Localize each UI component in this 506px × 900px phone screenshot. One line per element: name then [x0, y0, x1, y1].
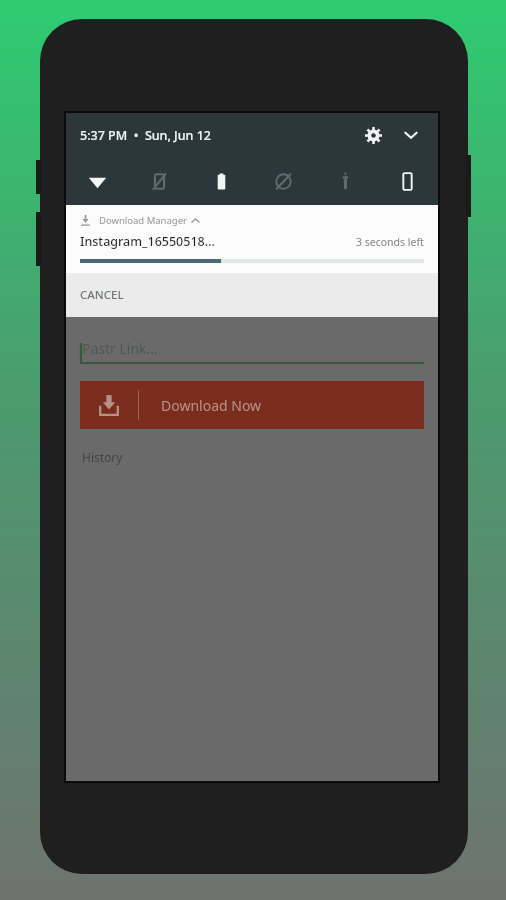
- staticText: Pastr Link...: [82, 339, 158, 358]
- staticText: 5:37 PM • Sun, Jun 12: [80, 127, 211, 144]
- button[interactable]: Download Manager: [66, 205, 438, 273]
- button[interactable]: Battery Saver: [190, 157, 252, 205]
- staticText: Download Manager: [99, 214, 187, 227]
- button[interactable]: Expand: [396, 120, 426, 150]
- staticText: CANCEL: [80, 287, 124, 303]
- button[interactable]: Download Now: [80, 381, 424, 429]
- staticText: Download Now: [161, 396, 262, 415]
- button[interactable]: CANCEL: [72, 279, 132, 311]
- button[interactable]: Flashlight: [314, 157, 376, 205]
- button[interactable]: Wi-Fi: [66, 157, 128, 205]
- button[interactable]: Location: [252, 157, 314, 205]
- staticText: 3 seconds left: [356, 235, 424, 249]
- staticText: Instagram_1655051833176.mp4: [80, 233, 218, 250]
- button[interactable]: Pastr Link...: [80, 335, 424, 365]
- staticText: History: [82, 449, 123, 465]
- button[interactable]: Settings: [358, 120, 388, 150]
- button[interactable]: Rotation: [128, 157, 190, 205]
- button[interactable]: History: [80, 445, 125, 469]
- button[interactable]: Cast: [376, 157, 438, 205]
